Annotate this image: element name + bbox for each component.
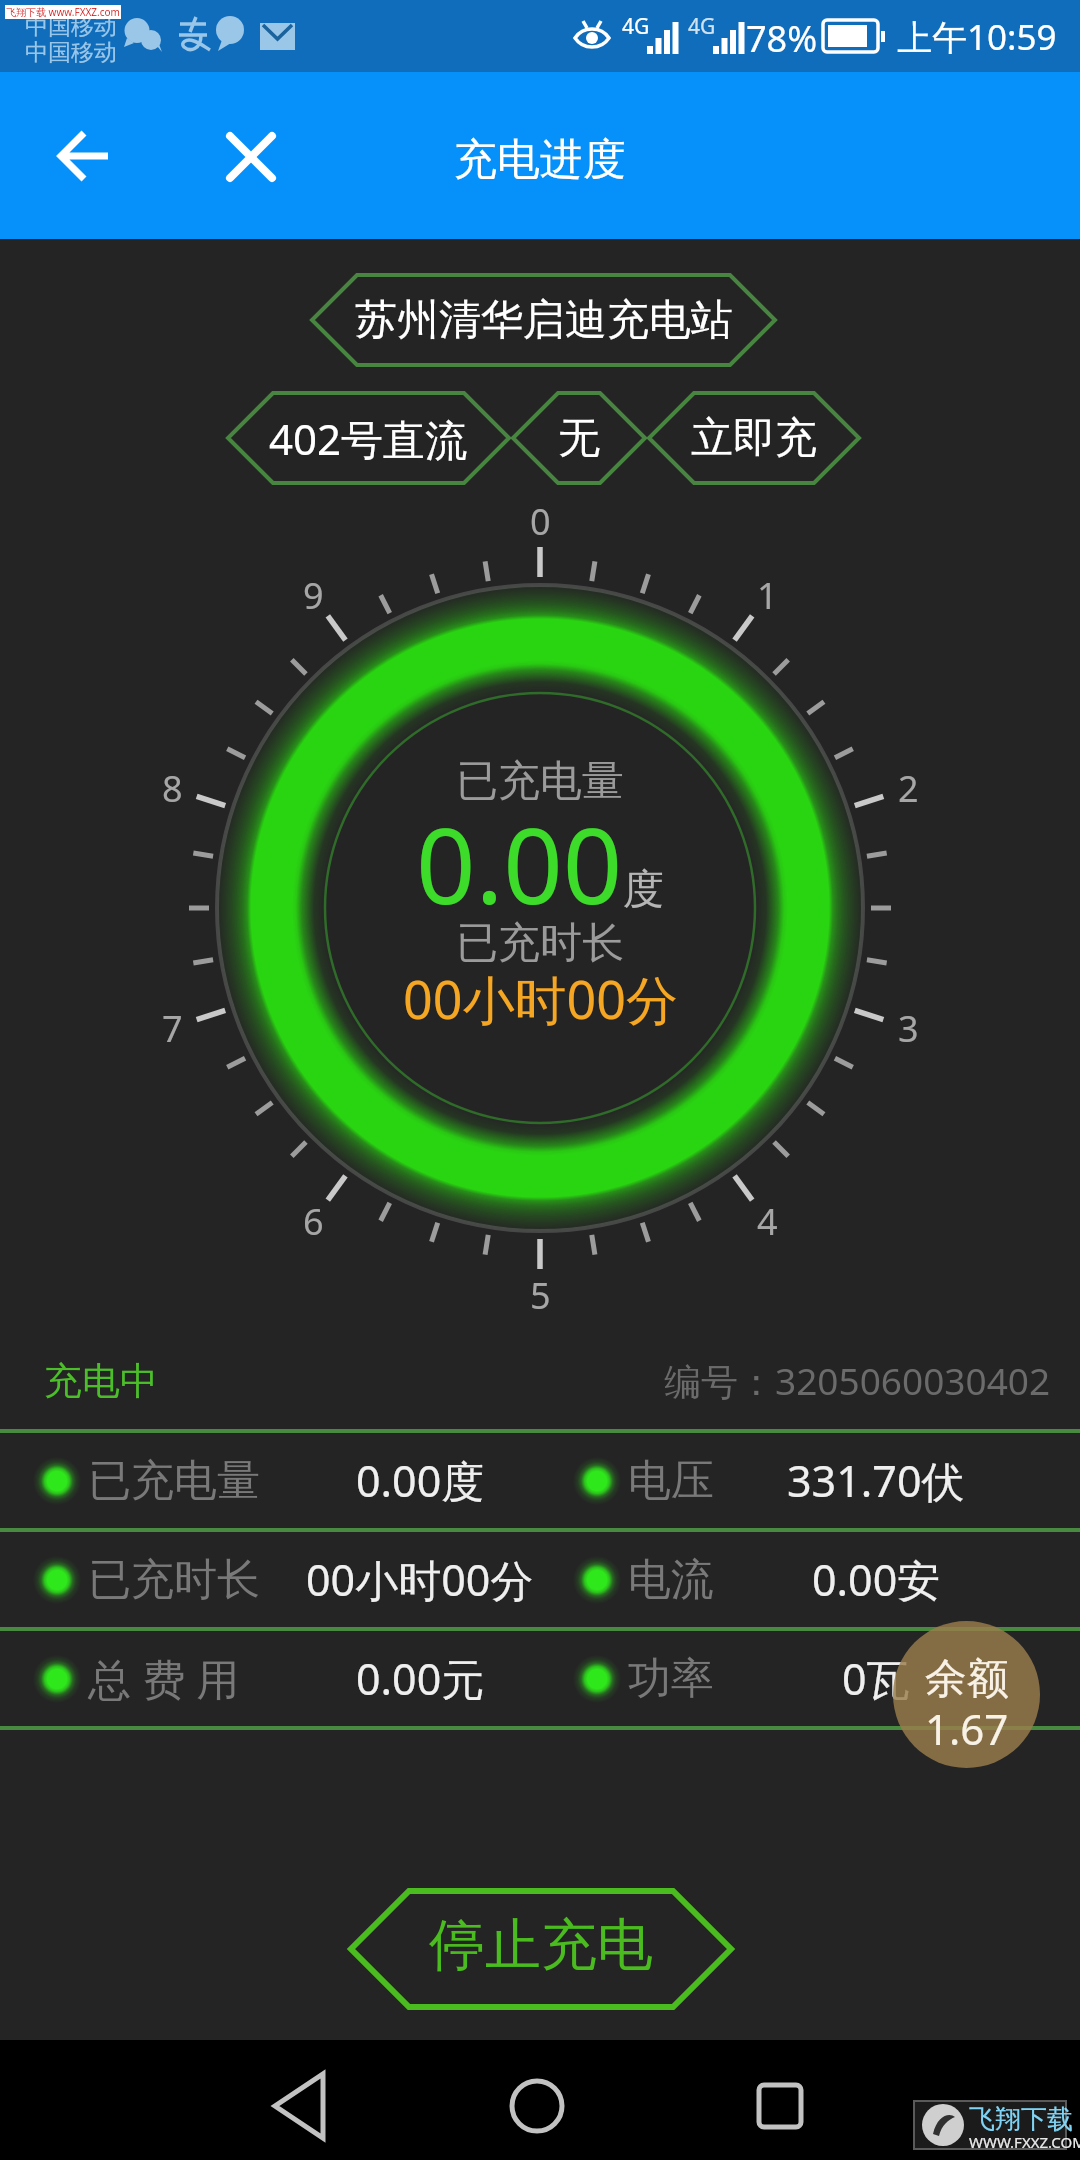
staticText: 331.70伏 [787,1451,965,1510]
button[interactable]: 停止充电 [348,1888,734,2010]
staticText: WWW.FXXZ.COM [969,2132,1080,2152]
staticText: 0.00度 [356,1451,485,1510]
staticText: 4 [757,1197,778,1246]
staticText: 已充时长 [88,1553,260,1607]
staticText: 电流 [628,1553,714,1607]
button[interactable]: 电压 [540,1433,1080,1528]
staticText: 编号：3205060030402 [664,1355,1051,1406]
staticText: 苏州清华启迪充电站 [355,294,733,347]
staticText: 9 [303,571,324,620]
staticText: 已充电量 [456,755,624,808]
staticText: 0瓦 [842,1649,910,1708]
staticText: 00小时00分 [403,963,678,1034]
button[interactable]: Back [40,112,130,202]
staticText: 中国移动 [25,12,117,41]
staticText: 3 [898,1004,919,1053]
staticText: 8 [162,764,183,813]
staticText: 功率 [628,1652,714,1706]
button[interactable]: 功率 [540,1631,1080,1726]
staticText: 余额 [925,1653,1009,1706]
staticText: 4G [622,12,650,41]
staticText: 78% [746,14,818,63]
staticText: 0.00 [416,793,623,935]
staticText: 充电进度 [454,133,626,187]
staticText: 立即充 [691,412,817,465]
staticText: 00小时00分 [306,1550,534,1609]
staticText: 无 [558,412,600,465]
button[interactable]: 无 [511,391,647,485]
staticText: 上午10:59 [897,13,1057,61]
staticText: 0 [530,497,551,546]
button[interactable]: Back [240,2058,360,2142]
staticText: 充电中 [44,1357,158,1405]
staticText: 5 [530,1271,551,1320]
staticText: 2 [898,764,919,813]
staticText: 6 [303,1197,324,1246]
staticText: 1.67 [925,1700,1009,1757]
staticText: 度 [623,864,664,916]
staticText: 电压 [628,1454,714,1508]
staticText: 飞翔下载 [969,2103,1073,2136]
staticText: 1 [757,571,778,620]
button[interactable]: 已充时长 [0,1532,540,1627]
button[interactable]: 余额 [893,1621,1040,1768]
staticText: 4G [688,12,716,41]
staticText: 已充时长 [456,917,624,970]
staticText: 停止充电 [429,1910,653,1981]
button[interactable]: Home [480,2058,600,2142]
staticText: 7 [162,1004,183,1053]
button[interactable]: Recents [720,2058,840,2142]
staticText: 0.00元 [356,1649,485,1708]
button[interactable]: 电流 [540,1532,1080,1627]
button[interactable]: 立即充 [647,391,861,485]
staticText: 已充电量 [88,1454,260,1508]
button[interactable]: Close [206,112,296,202]
staticText: 总 费 用 [88,1649,240,1708]
button[interactable]: 苏州清华启迪充电站 [310,273,777,367]
staticText: 402号直流 [269,410,468,467]
staticText: 0.00安 [812,1550,941,1609]
button[interactable]: 总 费 用 [0,1631,540,1726]
button[interactable]: 402号直流 [226,391,511,485]
staticText: 飞翔下载 www.FXXZ.com [6,5,120,19]
staticText: 中国移动 [25,38,117,67]
button[interactable]: 已充电量 [0,1433,540,1528]
